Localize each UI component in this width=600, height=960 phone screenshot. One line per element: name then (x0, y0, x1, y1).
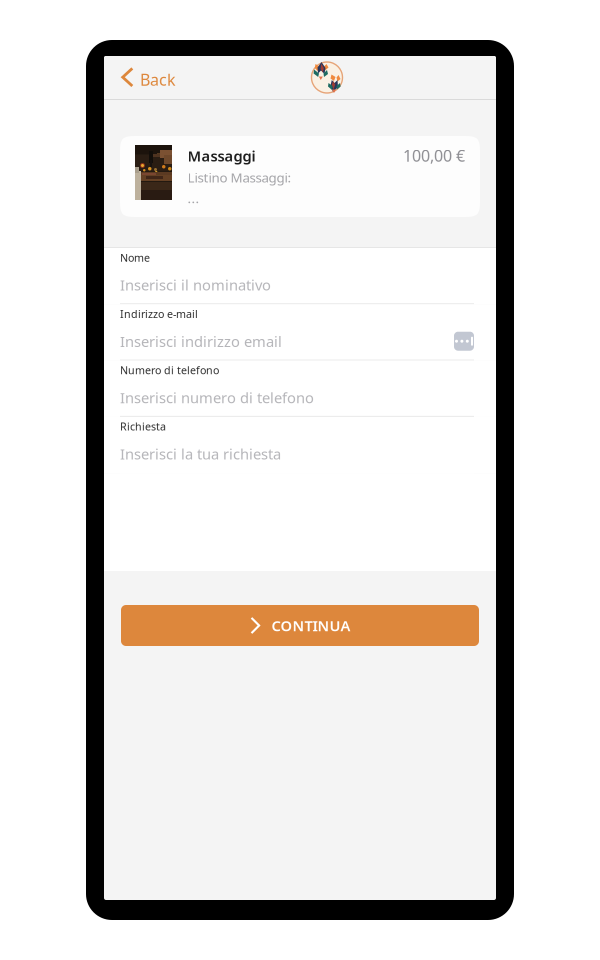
staticText: Indirizzo e-mail (120, 307, 198, 321)
staticText: Listino Massaggi: (187, 168, 291, 186)
staticText: Inserisci numero di telefono (120, 388, 314, 407)
staticText: CONTINUA (271, 616, 350, 635)
button[interactable]: CONTINUA (121, 605, 479, 646)
staticText: Nome (120, 250, 150, 265)
button[interactable]: Back (104, 56, 188, 99)
staticText: 100,00 € (403, 145, 465, 166)
staticText: Massaggi (187, 146, 255, 165)
staticText: ... (187, 189, 199, 207)
button[interactable]: Home (311, 61, 343, 93)
button[interactable]: Richiesta (104, 417, 496, 473)
button[interactable]: Massaggi (120, 136, 480, 217)
staticText: Inserisci la tua richiesta (120, 444, 281, 464)
button[interactable]: Numero di telefono (104, 361, 496, 417)
button[interactable]: Nome (104, 248, 496, 304)
staticText: Back (140, 69, 176, 90)
staticText: Numero di telefono (120, 363, 219, 377)
staticText: Richiesta (120, 419, 166, 434)
button[interactable]: Indirizzo e-mail (104, 304, 496, 361)
staticText: Inserisci indirizzo email (120, 331, 282, 351)
staticText: Inserisci il nominativo (120, 275, 271, 295)
